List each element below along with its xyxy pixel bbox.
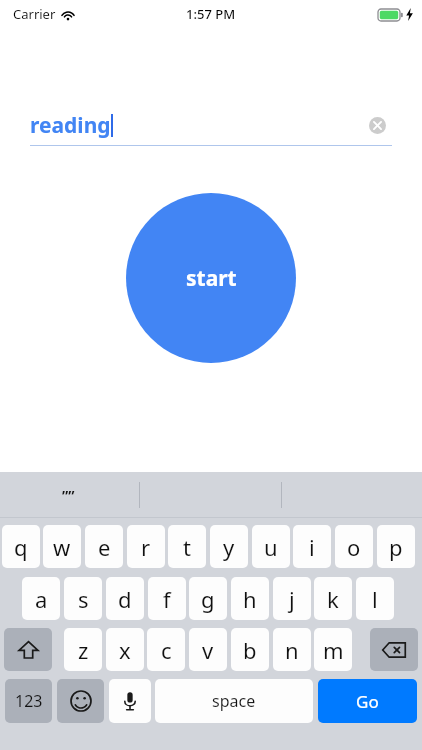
- button[interactable]: j: [273, 577, 311, 620]
- staticText: Go: [356, 690, 379, 713]
- staticText: reading: [30, 111, 111, 140]
- staticText: Carrier: [13, 5, 56, 23]
- button[interactable]: z: [64, 628, 102, 671]
- button[interactable]: start: [126, 193, 296, 363]
- staticText: n: [285, 635, 299, 665]
- staticText: r: [141, 532, 151, 562]
- button[interactable]: Emoji: [57, 679, 104, 723]
- button[interactable]: 123: [5, 679, 52, 723]
- button[interactable]: r: [127, 525, 165, 568]
- button[interactable]: s: [64, 577, 102, 620]
- button[interactable]: p: [377, 525, 415, 568]
- button[interactable]: h: [231, 577, 269, 620]
- staticText: a: [35, 584, 48, 614]
- button[interactable]: c: [147, 628, 185, 671]
- staticText: g: [201, 584, 215, 614]
- staticText: i: [309, 532, 315, 562]
- button[interactable]: space: [155, 679, 313, 723]
- button[interactable]: n: [273, 628, 311, 671]
- button[interactable]: f: [148, 577, 186, 620]
- button[interactable]: l: [356, 577, 394, 620]
- staticText: m: [323, 635, 344, 665]
- staticText: z: [78, 635, 89, 665]
- staticText: v: [202, 635, 214, 665]
- button[interactable]: t: [168, 525, 206, 568]
- button[interactable]: Clear text: [365, 113, 389, 137]
- staticText: d: [118, 584, 132, 614]
- button[interactable]: Go: [318, 679, 417, 723]
- button[interactable]: reading: [0, 103, 422, 147]
- staticText: w: [53, 532, 71, 562]
- button[interactable]: k: [314, 577, 352, 620]
- button[interactable]: v: [189, 628, 227, 671]
- staticText: 1:57 PM: [186, 5, 236, 23]
- button[interactable]: b: [231, 628, 269, 671]
- button[interactable]: Dictation: [109, 679, 151, 723]
- button[interactable]: w: [43, 525, 81, 568]
- staticText: x: [119, 635, 131, 665]
- staticText: h: [243, 584, 257, 614]
- staticText: u: [264, 532, 278, 562]
- button[interactable]: m: [314, 628, 352, 671]
- staticText: c: [161, 635, 172, 665]
- button[interactable]: Shift: [4, 628, 52, 671]
- button[interactable]: i: [293, 525, 331, 568]
- button[interactable]: Backspace: [370, 628, 418, 671]
- staticText: start: [186, 264, 237, 293]
- staticText: 123: [15, 690, 43, 712]
- staticText: q: [14, 532, 28, 562]
- staticText: y: [223, 532, 235, 562]
- button[interactable]: y: [210, 525, 248, 568]
- staticText: k: [327, 584, 339, 614]
- staticText: j: [289, 584, 295, 614]
- staticText: s: [78, 584, 89, 614]
- staticText: f: [163, 584, 171, 614]
- button[interactable]: e: [85, 525, 123, 568]
- staticText: space: [212, 690, 256, 712]
- staticText: o: [347, 532, 361, 562]
- staticText: t: [183, 532, 191, 562]
- staticText: e: [98, 532, 111, 562]
- button[interactable]: q: [2, 525, 40, 568]
- staticText: p: [389, 532, 403, 562]
- button[interactable]: g: [189, 577, 227, 620]
- button[interactable]: o: [335, 525, 373, 568]
- button[interactable]: a: [22, 577, 60, 620]
- button[interactable]: u: [252, 525, 290, 568]
- staticText: l: [372, 584, 378, 614]
- staticText: ””: [62, 486, 75, 505]
- button[interactable]: x: [106, 628, 144, 671]
- button[interactable]: d: [106, 577, 144, 620]
- staticText: b: [243, 635, 257, 665]
